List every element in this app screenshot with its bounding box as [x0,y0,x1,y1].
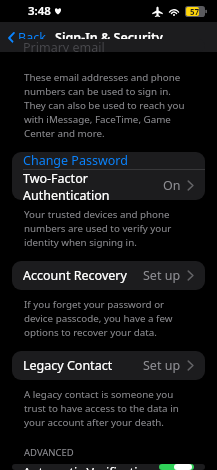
staticText: 3:48 [28,3,51,19]
staticText: Primary email [23,39,105,52]
staticText: If you forget your password or device pa… [24,298,193,339]
button[interactable]: Automatic Verification toggle [159,464,194,470]
staticText: These email addresses and phone numbers … [24,71,193,140]
button[interactable]: Two-Factor Authentication [12,170,205,200]
staticText: Change Password [23,152,194,169]
button[interactable]: Automatic Verification [12,464,205,470]
button[interactable]: Account Recovery [12,261,205,290]
staticText: Legacy Contact [23,357,143,374]
staticText: Account Recovery [23,267,143,284]
staticText: 57 [190,6,200,17]
staticText: Two-Factor Authentication [23,170,163,200]
staticText: Sign-In & Security [55,29,163,46]
staticText: ADVANCED [24,446,74,459]
staticText: A legacy contact is someone you trust to… [24,388,193,429]
staticText: Back [18,29,46,46]
staticText: On [163,177,181,194]
staticText: Set up [143,357,181,374]
button[interactable]: Back [0,25,54,50]
staticText: Automatic Verification [23,464,159,470]
button[interactable]: Change Password [12,152,205,169]
staticText: Your trusted devices and phone numbers a… [24,208,193,249]
button[interactable]: Legacy Contact [12,351,205,380]
staticText: Set up [143,267,181,284]
